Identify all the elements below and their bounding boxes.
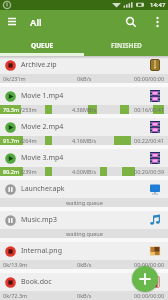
staticText: 4.00MB/s bbox=[72, 168, 97, 175]
button[interactable]: Movie 1.mp4 bbox=[0, 87, 168, 118]
staticText: 00:22/00:41 bbox=[134, 137, 165, 144]
staticText: Movie 2.mp4 bbox=[21, 122, 64, 132]
staticText: 00:00/00:00 bbox=[134, 292, 165, 299]
staticText: Internal.png bbox=[21, 246, 62, 256]
staticText: 00:00/00:00 bbox=[134, 261, 165, 268]
staticText: Archive.zip bbox=[21, 60, 57, 70]
staticText: All bbox=[30, 16, 42, 29]
staticText: 0kB/s bbox=[77, 75, 92, 82]
button[interactable] bbox=[122, 13, 140, 31]
staticText: 0kB/s bbox=[77, 261, 92, 268]
staticText: 14:47 bbox=[150, 1, 166, 9]
staticText: 70.3m bbox=[3, 106, 20, 113]
staticText: 91.7m bbox=[3, 137, 20, 144]
button[interactable] bbox=[132, 266, 158, 292]
staticText: 80.2m bbox=[3, 168, 20, 175]
button[interactable] bbox=[3, 14, 20, 31]
button[interactable]: Book.doc bbox=[0, 273, 168, 300]
staticText: 4.16MB/s bbox=[72, 137, 97, 144]
staticText: 00:20/00:39 bbox=[134, 168, 165, 175]
staticText: 0kB/s bbox=[77, 292, 92, 299]
staticText: Launcher.apk bbox=[21, 184, 65, 194]
button[interactable]: FINISHED bbox=[84, 34, 168, 56]
staticText: Music.mp3 bbox=[21, 215, 57, 225]
button[interactable]: Music.mp3 bbox=[0, 211, 168, 242]
staticText: 0k/72.3m bbox=[3, 292, 28, 299]
button[interactable]: Launcher.apk bbox=[0, 180, 168, 211]
button[interactable] bbox=[150, 13, 168, 31]
staticText: QUEUE bbox=[31, 41, 54, 50]
button[interactable]: QUEUE bbox=[0, 34, 84, 56]
button[interactable]: Movie 2.mp4 bbox=[0, 118, 168, 149]
staticText: waiting queue bbox=[66, 230, 103, 237]
button[interactable]: Movie 3.mp4 bbox=[0, 149, 168, 180]
staticText: waiting queue bbox=[66, 199, 103, 206]
staticText: 00:16/00:41 bbox=[134, 106, 165, 113]
staticText: 0k/13.9m bbox=[3, 261, 28, 268]
staticText: 0k/231m bbox=[3, 75, 26, 82]
staticText: /264m bbox=[20, 137, 37, 144]
staticText: Book.doc bbox=[21, 277, 52, 287]
staticText: Movie 3.mp4 bbox=[21, 153, 64, 163]
staticText: 4.38MB/s bbox=[72, 106, 97, 113]
staticText: /239m bbox=[20, 168, 37, 175]
staticText: FINISHED bbox=[111, 41, 142, 50]
button[interactable]: Internal.png bbox=[0, 242, 168, 273]
staticText: 00:00/00:00 bbox=[134, 75, 165, 82]
staticText: Movie 1.mp4 bbox=[21, 91, 64, 101]
staticText: /253m bbox=[20, 106, 37, 113]
button[interactable]: Archive.zip bbox=[0, 56, 168, 87]
